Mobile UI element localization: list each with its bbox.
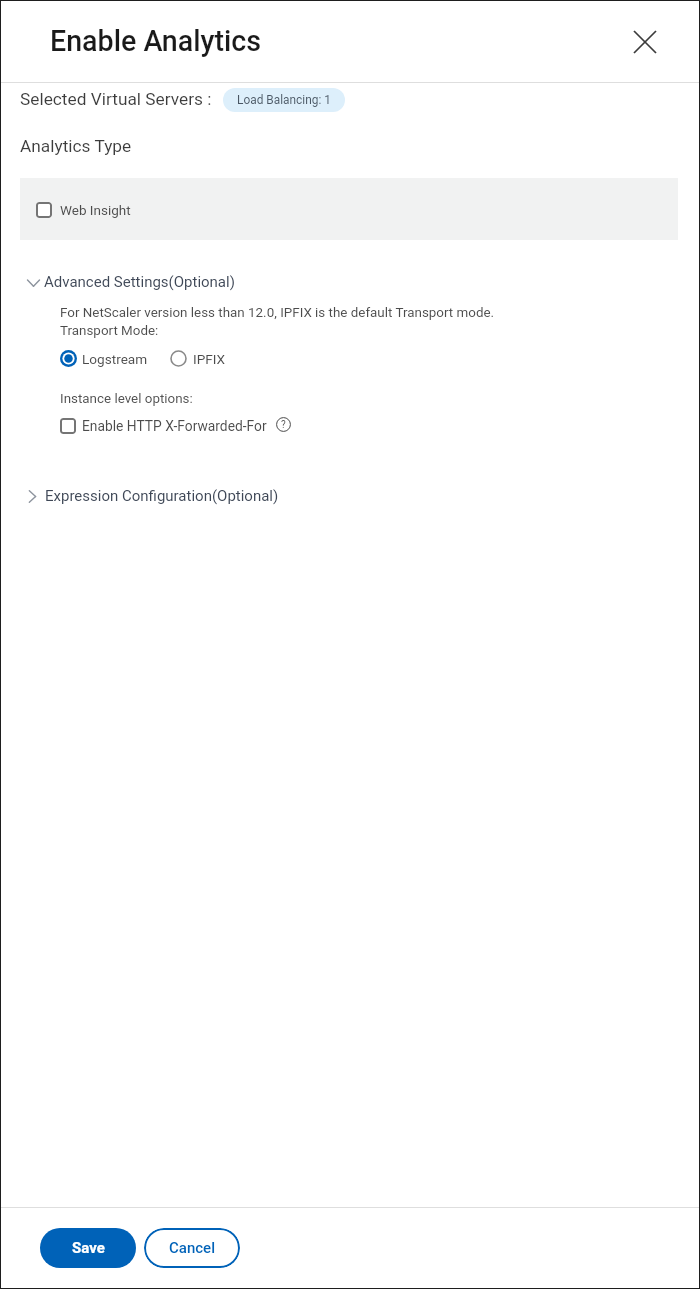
button[interactable]: Web Insight [20,178,678,240]
staticText: Selected Virtual Servers : [20,89,212,109]
staticText: IPFIX [193,351,226,367]
staticText: Transport Mode: [60,323,159,339]
staticText: Save [72,1239,105,1257]
button[interactable]: Enable HTTP X-Forwarded-For [60,412,267,440]
staticText: Load Balancing: 1 [237,93,331,107]
button[interactable]: IPFIX [170,348,226,369]
staticText: Instance level options: [60,391,193,407]
staticText: Expression Configuration(Optional) [45,487,279,505]
staticText: Enable Analytics [50,24,262,58]
button[interactable]: Help [274,415,292,433]
button[interactable]: Save [40,1228,136,1268]
staticText: Logstream [82,351,148,367]
button[interactable]: Cancel [144,1228,240,1268]
button[interactable]: Close [629,26,661,58]
button[interactable]: Expression Configuration(Optional) [27,485,279,507]
button[interactable]: Logstream [60,348,148,369]
staticText: ? [281,419,286,431]
button[interactable]: Advanced Settings(Optional) [27,271,235,293]
staticText: Enable HTTP X-Forwarded-For [82,418,267,434]
staticText: Advanced Settings(Optional) [44,273,235,291]
staticText: For NetScaler version less than 12.0, IP… [60,305,495,321]
staticText: Web Insight [60,202,131,218]
staticText: Cancel [169,1239,216,1257]
staticText: Analytics Type [20,136,132,156]
